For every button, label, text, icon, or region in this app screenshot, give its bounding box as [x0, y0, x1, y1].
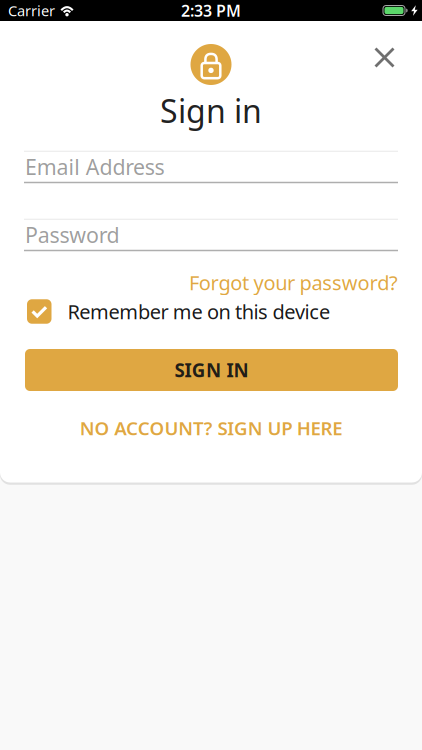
- button[interactable]: Forgot your password?: [189, 269, 398, 296]
- staticText: Sign in: [160, 89, 262, 132]
- button[interactable]: SIGN IN: [25, 349, 398, 391]
- button[interactable]: Password: [24, 219, 398, 251]
- staticText: 2:33 PM: [181, 0, 241, 21]
- staticText: NO ACCOUNT? SIGN UP HERE: [80, 416, 342, 440]
- staticText: Password: [25, 221, 120, 249]
- staticText: Remember me on this device: [67, 298, 330, 325]
- button[interactable]: NO ACCOUNT? SIGN UP HERE: [80, 416, 342, 440]
- button[interactable]: Remember me on this device: [27, 298, 401, 325]
- staticText: Forgot your password?: [189, 269, 398, 296]
- button[interactable]: [375, 48, 393, 66]
- staticText: Carrier: [8, 1, 55, 20]
- button[interactable]: Email Address: [24, 151, 398, 183]
- staticText: Email Address: [25, 153, 165, 181]
- staticText: SIGN IN: [174, 358, 249, 382]
